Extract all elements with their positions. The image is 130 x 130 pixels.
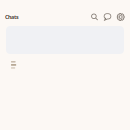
button[interactable]: Messages — [101, 11, 114, 23]
button[interactable]: Search — [88, 10, 101, 23]
staticText: Chats — [5, 13, 19, 21]
button[interactable]: Settings — [114, 10, 127, 24]
